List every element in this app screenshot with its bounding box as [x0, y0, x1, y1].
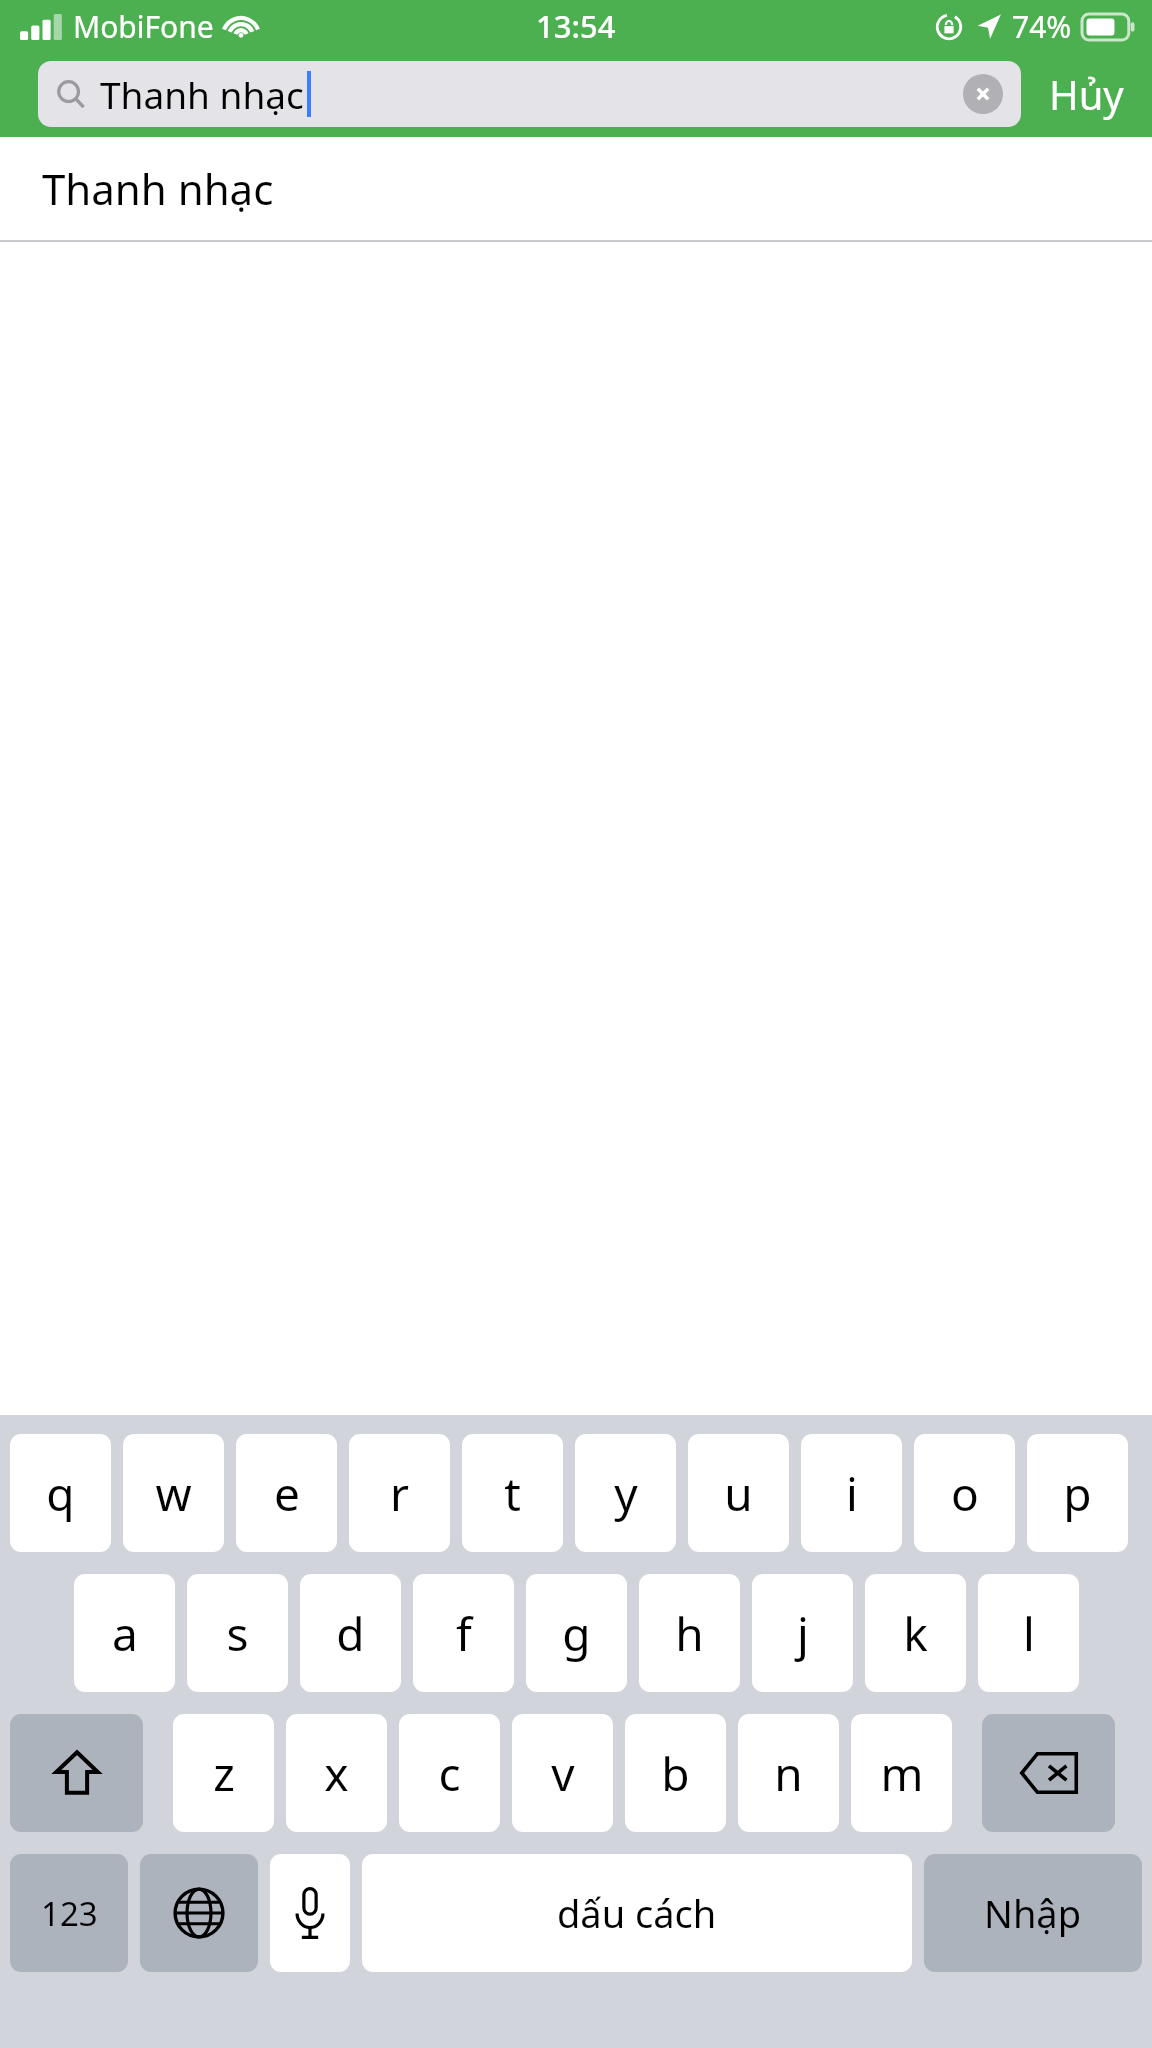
button[interactable]: Thanh nhạc — [38, 61, 1021, 127]
button[interactable]: Backspace — [982, 1714, 1115, 1832]
button[interactable]: d — [300, 1574, 401, 1692]
button[interactable]: Thanh nhạc — [0, 137, 1152, 240]
staticText: o — [951, 1462, 979, 1525]
button[interactable]: f — [413, 1574, 514, 1692]
staticText: 13:54 — [536, 5, 616, 47]
button[interactable]: i — [801, 1434, 902, 1552]
staticText: dấu cách — [557, 1887, 717, 1939]
staticText: x — [324, 1742, 349, 1805]
staticText: v — [551, 1742, 575, 1805]
button[interactable]: u — [688, 1434, 789, 1552]
staticText: n — [774, 1742, 803, 1805]
staticText: t — [504, 1462, 521, 1525]
button[interactable]: Change keyboard language — [140, 1854, 258, 1972]
staticText: c — [438, 1742, 461, 1805]
staticText: z — [213, 1742, 235, 1805]
button[interactable]: x — [286, 1714, 387, 1832]
button[interactable]: c — [399, 1714, 500, 1832]
button[interactable]: h — [639, 1574, 740, 1692]
staticText: s — [226, 1602, 249, 1665]
button[interactable]: o — [914, 1434, 1015, 1552]
button[interactable]: g — [526, 1574, 627, 1692]
staticText: k — [903, 1602, 928, 1665]
staticText: Thanh nhạc — [100, 69, 304, 119]
button[interactable]: Nhập — [924, 1854, 1142, 1972]
button[interactable]: Clear text — [963, 74, 1003, 114]
button[interactable]: b — [625, 1714, 726, 1832]
staticText: y — [614, 1462, 638, 1525]
staticText: Hủy — [1049, 67, 1124, 121]
staticText: e — [274, 1462, 300, 1525]
staticText: q — [46, 1462, 75, 1525]
button[interactable]: Shift — [10, 1714, 143, 1832]
button[interactable]: m — [851, 1714, 952, 1832]
button[interactable]: Voice input — [270, 1854, 350, 1972]
button[interactable]: n — [738, 1714, 839, 1832]
button[interactable]: p — [1027, 1434, 1128, 1552]
button[interactable]: w — [123, 1434, 224, 1552]
staticText: Nhập — [984, 1887, 1082, 1939]
staticText: m — [880, 1742, 924, 1805]
button[interactable]: dấu cách — [362, 1854, 912, 1972]
staticText: g — [562, 1602, 591, 1665]
staticText: w — [155, 1462, 192, 1525]
button[interactable]: v — [512, 1714, 613, 1832]
staticText: l — [1023, 1602, 1035, 1665]
staticText: f — [456, 1602, 472, 1665]
staticText: j — [797, 1602, 809, 1665]
button[interactable]: 123 — [10, 1854, 128, 1972]
staticText: a — [112, 1602, 138, 1665]
button[interactable]: y — [575, 1434, 676, 1552]
staticText: i — [846, 1462, 858, 1525]
button[interactable]: a — [74, 1574, 175, 1692]
button[interactable]: t — [462, 1434, 563, 1552]
staticText: MobiFone — [73, 6, 214, 47]
staticText: u — [724, 1462, 753, 1525]
button[interactable]: Hủy — [1043, 61, 1130, 127]
staticText: Thanh nhạc — [42, 160, 274, 217]
button[interactable]: q — [10, 1434, 111, 1552]
staticText: 123 — [41, 1891, 98, 1936]
button[interactable]: z — [173, 1714, 274, 1832]
button[interactable]: s — [187, 1574, 288, 1692]
staticText: h — [675, 1602, 704, 1665]
staticText: d — [336, 1602, 365, 1665]
button[interactable]: l — [978, 1574, 1079, 1692]
button[interactable]: e — [236, 1434, 337, 1552]
staticText: b — [661, 1742, 690, 1805]
staticText: r — [390, 1462, 409, 1525]
staticText: p — [1063, 1462, 1092, 1525]
button[interactable]: r — [349, 1434, 450, 1552]
button[interactable]: k — [865, 1574, 966, 1692]
button[interactable]: j — [752, 1574, 853, 1692]
staticText: 74% — [1012, 6, 1072, 47]
